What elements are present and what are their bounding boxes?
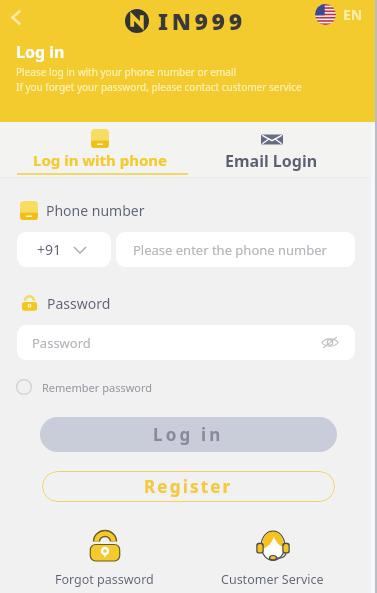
staticText: Register bbox=[144, 475, 233, 498]
staticText: Phone number bbox=[46, 201, 145, 220]
button[interactable]: Remember password bbox=[16, 379, 153, 395]
staticText: IN999 bbox=[158, 5, 246, 36]
staticText: Log in with phone bbox=[33, 150, 168, 170]
staticText: Please log in with your phone number or … bbox=[16, 65, 237, 79]
button[interactable]: Back bbox=[1, 2, 31, 32]
button[interactable]: EN bbox=[315, 4, 363, 25]
button[interactable]: Email Login bbox=[188, 122, 377, 177]
button[interactable]: Forgot password bbox=[47, 530, 162, 588]
staticText: Password bbox=[47, 294, 111, 313]
staticText: Log in bbox=[153, 423, 224, 446]
button[interactable]: +91 bbox=[17, 232, 111, 267]
staticText: Remember password bbox=[42, 380, 153, 395]
staticText: EN bbox=[343, 5, 363, 24]
staticText: +91 bbox=[37, 240, 62, 259]
button[interactable]: Password bbox=[17, 325, 355, 360]
staticText: Please enter the phone number bbox=[133, 241, 327, 259]
staticText: Password bbox=[32, 334, 91, 352]
staticText: Email Login bbox=[225, 150, 318, 172]
staticText: Forgot password bbox=[55, 571, 154, 588]
staticText: If you forget your password, please cont… bbox=[16, 80, 302, 94]
button[interactable]: Log in bbox=[40, 417, 337, 452]
other: Show password bbox=[321, 335, 339, 350]
staticText: Log in bbox=[16, 41, 65, 63]
button[interactable]: Register bbox=[42, 471, 335, 502]
button[interactable]: Customer Service bbox=[213, 530, 332, 588]
button[interactable]: Please enter the phone number bbox=[116, 232, 355, 267]
staticText: Customer Service bbox=[221, 571, 324, 588]
button[interactable]: Log in with phone bbox=[0, 122, 188, 177]
